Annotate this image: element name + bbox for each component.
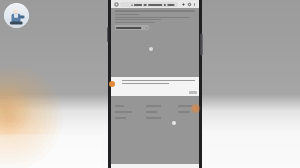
button[interactable]	[120, 2, 178, 7]
button[interactable]: Channel avatar	[4, 3, 29, 28]
button[interactable]	[178, 105, 192, 107]
button[interactable]: Tabs	[186, 1, 192, 7]
button[interactable]: Home	[113, 1, 119, 7]
button[interactable]: More options	[192, 2, 197, 7]
button[interactable]	[115, 25, 149, 30]
button[interactable]: New tab	[180, 1, 186, 7]
